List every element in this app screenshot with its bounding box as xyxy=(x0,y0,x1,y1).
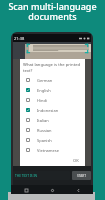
staticText: Italian xyxy=(37,118,49,123)
staticText: German xyxy=(37,78,53,83)
button[interactable]: Back xyxy=(74,186,82,194)
staticText: Indonesian xyxy=(37,108,59,113)
button[interactable]: Russian xyxy=(20,125,85,135)
staticText: 21:38 xyxy=(14,36,25,41)
staticText: START xyxy=(77,174,87,178)
button[interactable]: Italian xyxy=(20,115,85,125)
button[interactable]: Vietnamese xyxy=(20,145,85,155)
button[interactable]: English xyxy=(20,85,85,95)
button[interactable]: Home xyxy=(48,186,56,194)
staticText: Vietnamese xyxy=(37,148,60,153)
button[interactable]: Hindi xyxy=(20,95,85,105)
staticText: Hindi xyxy=(37,98,47,103)
button[interactable]: Spanish xyxy=(20,135,85,145)
staticText: English xyxy=(37,88,51,93)
staticText: Scan multi-language documents xyxy=(8,0,97,23)
button[interactable]: German xyxy=(20,75,85,85)
staticText: Russian xyxy=(37,128,52,133)
staticText: Spanish xyxy=(37,138,52,143)
staticText: THE TEXT IS IN xyxy=(15,174,37,178)
button[interactable]: OK xyxy=(73,158,85,166)
button[interactable]: Recent apps xyxy=(22,186,30,194)
button[interactable]: Indonesian xyxy=(20,105,85,115)
button[interactable]: THE TEXT IS IN xyxy=(13,171,70,180)
button[interactable]: START xyxy=(72,171,91,180)
staticText: What language is the printed text? xyxy=(23,62,81,73)
